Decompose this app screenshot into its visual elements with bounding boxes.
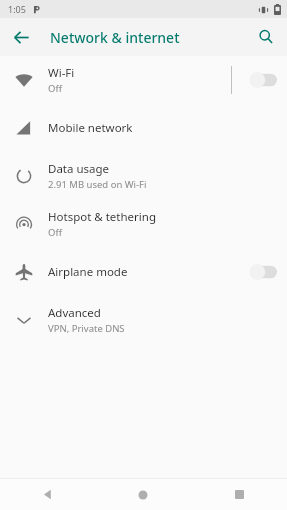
staticText: Advanced [48, 305, 101, 321]
button[interactable]: Home [95, 479, 191, 510]
button[interactable]: Search settings [250, 21, 282, 53]
button[interactable]: Mobile network [0, 104, 287, 152]
button[interactable]: Recent apps [191, 479, 287, 510]
button[interactable]: Back [0, 479, 95, 510]
button[interactable]: Wi-Fi [0, 56, 287, 104]
staticText: Off [48, 226, 62, 239]
staticText: Network & internet [50, 28, 180, 47]
staticText: VPN, Private DNS [48, 322, 125, 335]
button[interactable]: Airplane mode switch [245, 257, 281, 287]
button[interactable]: Navigate up [5, 21, 37, 53]
staticText: 2.91 MB used on Wi-Fi [48, 178, 147, 191]
staticText: Off [48, 82, 62, 95]
button[interactable]: Hotspot & tethering [0, 200, 287, 248]
staticText: 1:05 [8, 3, 26, 15]
staticText: Airplane mode [48, 264, 128, 280]
button[interactable]: Advanced [0, 296, 287, 344]
button[interactable]: Data usage [0, 152, 287, 200]
button[interactable]: Airplane mode [0, 248, 287, 296]
staticText: Mobile network [48, 120, 133, 136]
button[interactable]: Wi-Fi switch [245, 65, 281, 95]
staticText: Wi-Fi [48, 65, 75, 81]
staticText: Data usage [48, 161, 110, 177]
staticText: Hotspot & tethering [48, 209, 156, 225]
